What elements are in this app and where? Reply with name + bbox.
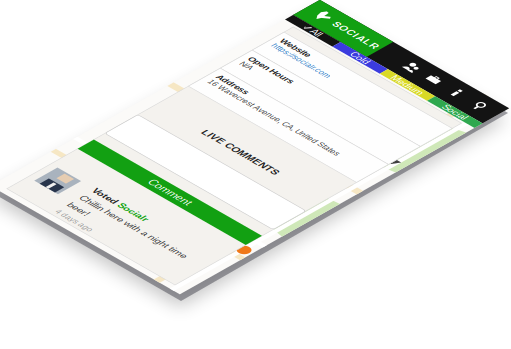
button[interactable]: Search xyxy=(278,8,306,36)
staticText: 16 Wavecrest Avenue, CA, United States xyxy=(27,212,246,225)
button[interactable]: Medium xyxy=(160,46,240,60)
button[interactable]: Social xyxy=(240,46,320,60)
staticText: LIVE COMMENTS xyxy=(97,292,223,308)
staticText: Address xyxy=(27,197,78,211)
staticText: Social xyxy=(261,45,299,61)
staticText: N/A xyxy=(27,157,46,170)
staticText: Open Hours xyxy=(27,142,100,156)
